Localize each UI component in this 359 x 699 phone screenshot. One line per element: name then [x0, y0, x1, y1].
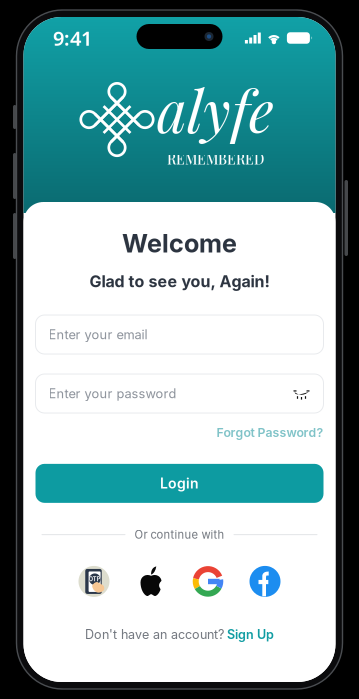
- staticText: Or continue with: [134, 528, 224, 541]
- button[interactable]: Sign in with Apple: [122, 562, 179, 600]
- staticText: Enter your password: [48, 386, 176, 401]
- staticText: Enter your email: [48, 327, 147, 342]
- staticText: Glad to see you, Again!: [89, 272, 269, 291]
- staticText: alyfe: [157, 71, 274, 147]
- staticText: Welcome: [122, 228, 237, 259]
- button[interactable]: Forgot Password?: [216, 423, 323, 442]
- button[interactable]: Sign in with Facebook: [236, 562, 293, 600]
- button[interactable]: Show password: [284, 387, 310, 400]
- button[interactable]: Login: [35, 464, 323, 503]
- button[interactable]: Sign in with OTP: [65, 562, 122, 600]
- staticText: Login: [160, 475, 199, 492]
- staticText: REMEMBERED: [167, 149, 264, 168]
- staticText: 9:41: [53, 25, 92, 51]
- button[interactable]: Sign Up: [227, 627, 274, 642]
- staticText: Don't have an account?: [85, 627, 224, 642]
- staticText: Sign Up: [227, 627, 274, 642]
- staticText: OTP: [89, 576, 101, 583]
- button[interactable]: Sign in with Google: [179, 562, 236, 600]
- staticText: Forgot Password?: [216, 425, 323, 440]
